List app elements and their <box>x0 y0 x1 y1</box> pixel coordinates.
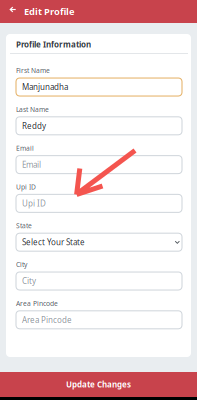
button[interactable]: Upi ID <box>16 194 182 212</box>
staticText: Select Your State <box>22 237 85 247</box>
button[interactable]: Email <box>16 156 182 174</box>
staticText: City <box>16 260 27 269</box>
button[interactable]: Manjunadha <box>16 78 182 96</box>
staticText: Email <box>22 159 41 170</box>
button[interactable]: Reddy <box>16 117 182 135</box>
staticText: Area Pincode <box>16 299 58 308</box>
staticText: Email <box>16 144 34 153</box>
staticText: First Name <box>16 66 50 75</box>
staticText: Manjunadha <box>22 82 68 92</box>
staticText: Reddy <box>22 120 46 131</box>
button[interactable]: Back <box>6 0 26 23</box>
staticText: State <box>16 221 32 230</box>
staticText: Last Name <box>16 105 49 114</box>
staticText: City <box>22 276 36 286</box>
staticText: Upi ID <box>22 198 46 209</box>
staticText: Edit Profile <box>24 5 75 18</box>
button[interactable]: Select Your State <box>16 233 182 251</box>
button[interactable]: Update Changes <box>0 372 197 397</box>
button[interactable]: Edit Profile <box>24 0 84 23</box>
staticText: Upi ID <box>16 182 36 191</box>
button[interactable]: Area Pincode <box>16 311 182 329</box>
staticText: Area Pincode <box>22 314 72 325</box>
staticText: Update Changes <box>66 379 131 390</box>
staticText: Profile Information <box>16 39 91 50</box>
button[interactable]: City <box>16 272 182 290</box>
